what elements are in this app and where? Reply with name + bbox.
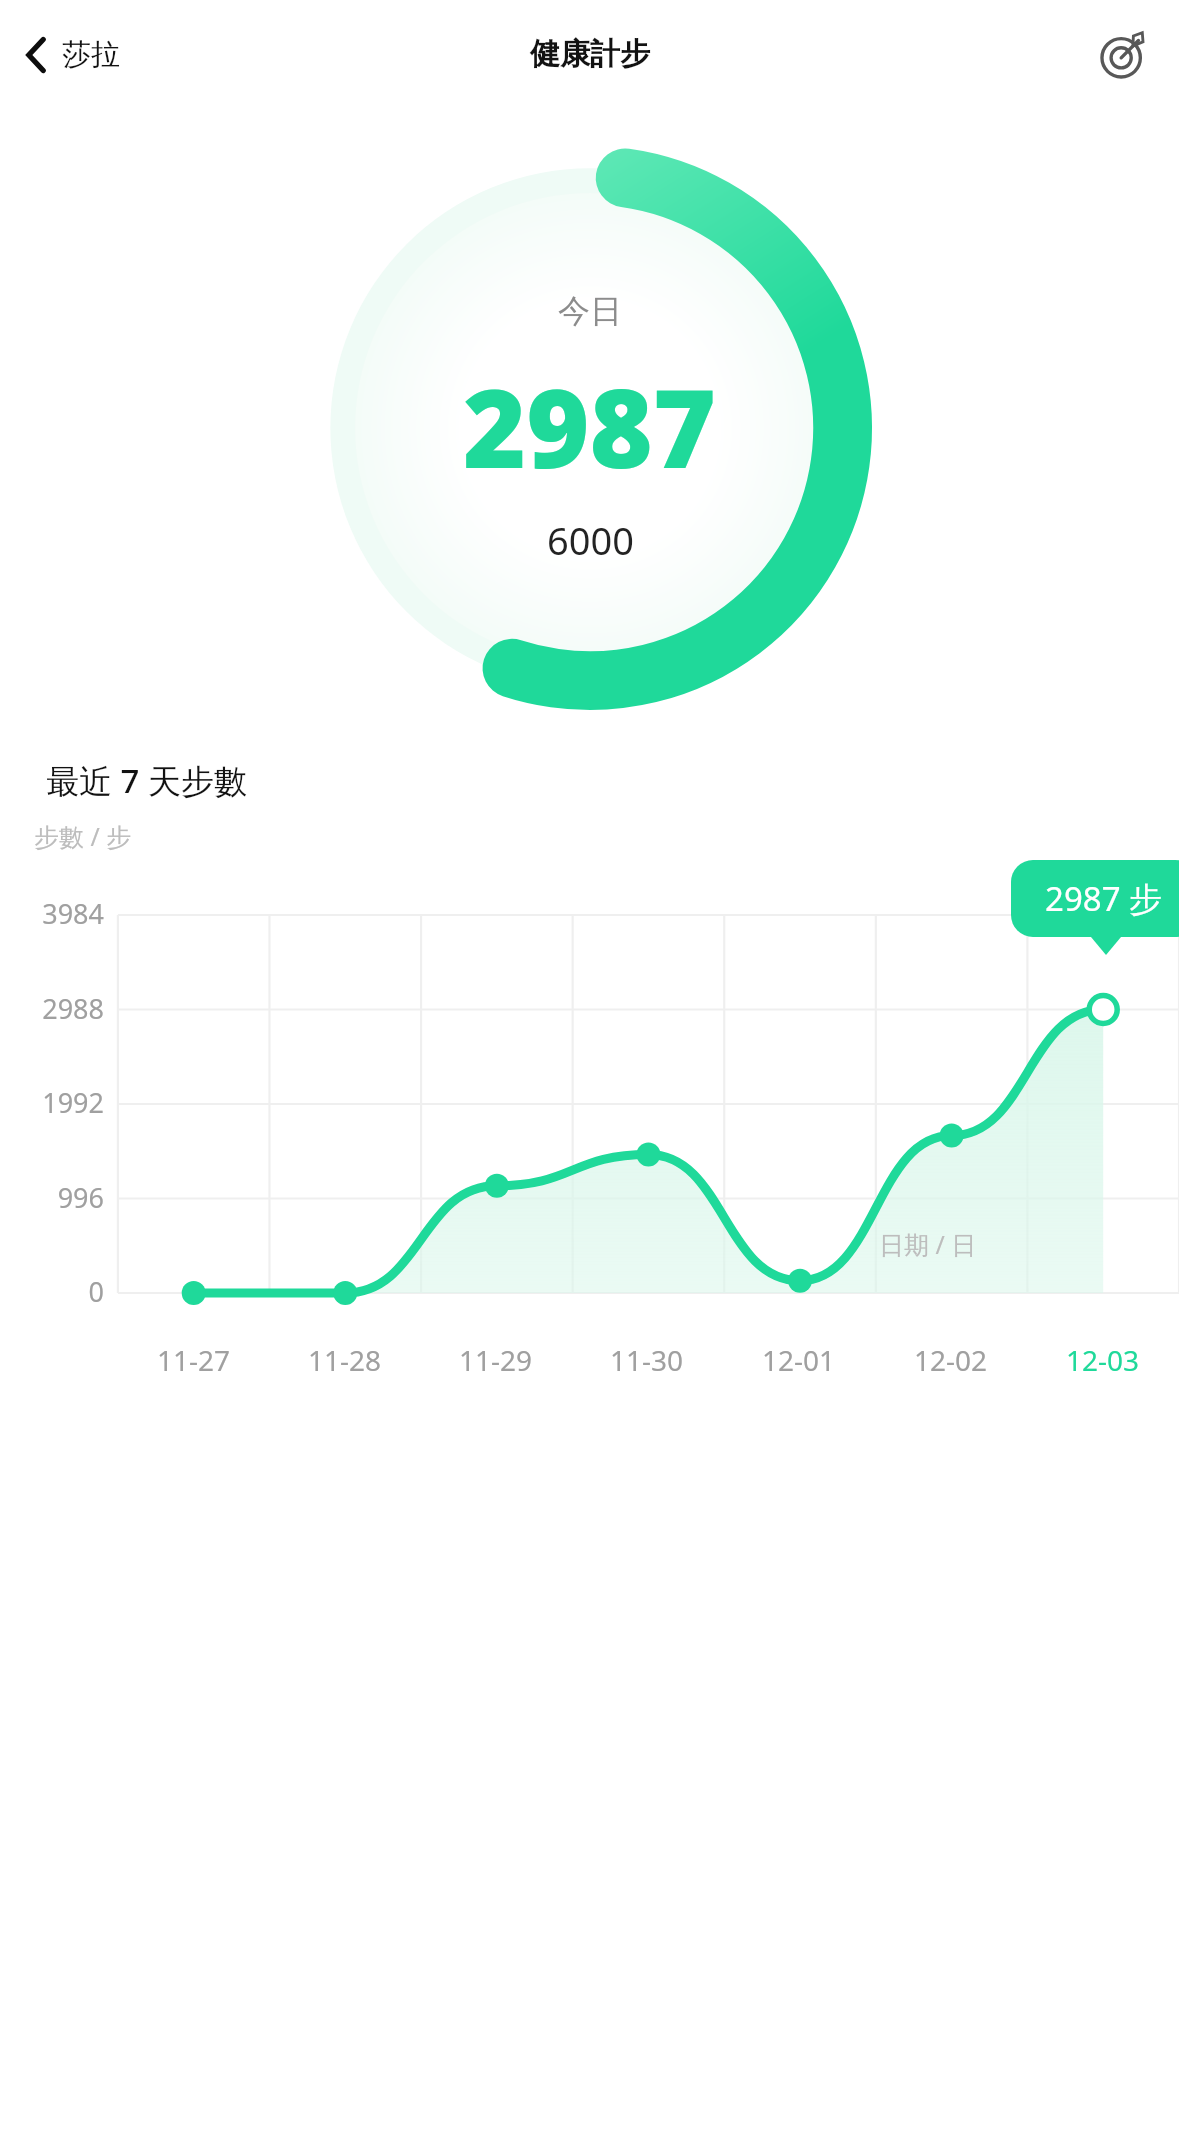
staticText: 11-30 — [610, 1341, 684, 1379]
button[interactable]: 莎拉 — [14, 28, 130, 81]
staticText: 0 — [0, 1273, 104, 1310]
button[interactable]: Set step goal — [1093, 22, 1157, 86]
staticText: 最近 7 天步數 — [46, 758, 248, 803]
staticText: 2988 — [0, 990, 104, 1027]
staticText: 莎拉 — [62, 36, 120, 73]
staticText: 步數 / 步 — [34, 819, 132, 853]
staticText: 3984 — [0, 895, 104, 932]
staticText: 日期 / 日 — [879, 1227, 977, 1261]
staticText: 健康計步 — [530, 35, 650, 73]
staticText: 11-27 — [157, 1341, 231, 1379]
staticText: 今日 — [558, 291, 622, 331]
staticText: 6000 — [547, 514, 634, 566]
staticText: 12-03 — [1066, 1341, 1140, 1379]
staticText: 12-02 — [914, 1341, 988, 1379]
staticText: 11-29 — [459, 1341, 533, 1379]
staticText: 11-28 — [308, 1341, 382, 1379]
staticText: 1992 — [0, 1084, 104, 1121]
staticText: 12-01 — [762, 1341, 836, 1379]
staticText: 2987 步 — [1045, 876, 1163, 921]
staticText: 2987 — [463, 353, 717, 500]
staticText: 996 — [0, 1179, 104, 1216]
